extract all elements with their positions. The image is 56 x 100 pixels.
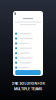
button[interactable] [15, 70, 41, 75]
button[interactable] [15, 65, 41, 70]
button[interactable] [15, 36, 41, 41]
staticText: ONE SOLUTION FOR [11, 81, 44, 85]
button[interactable] [15, 31, 41, 36]
button[interactable] [15, 46, 41, 51]
button[interactable] [15, 55, 41, 60]
staticText: MULTIPLE TEAMS [14, 87, 42, 91]
button[interactable] [15, 60, 41, 65]
button[interactable] [15, 51, 41, 55]
button[interactable] [15, 41, 41, 46]
